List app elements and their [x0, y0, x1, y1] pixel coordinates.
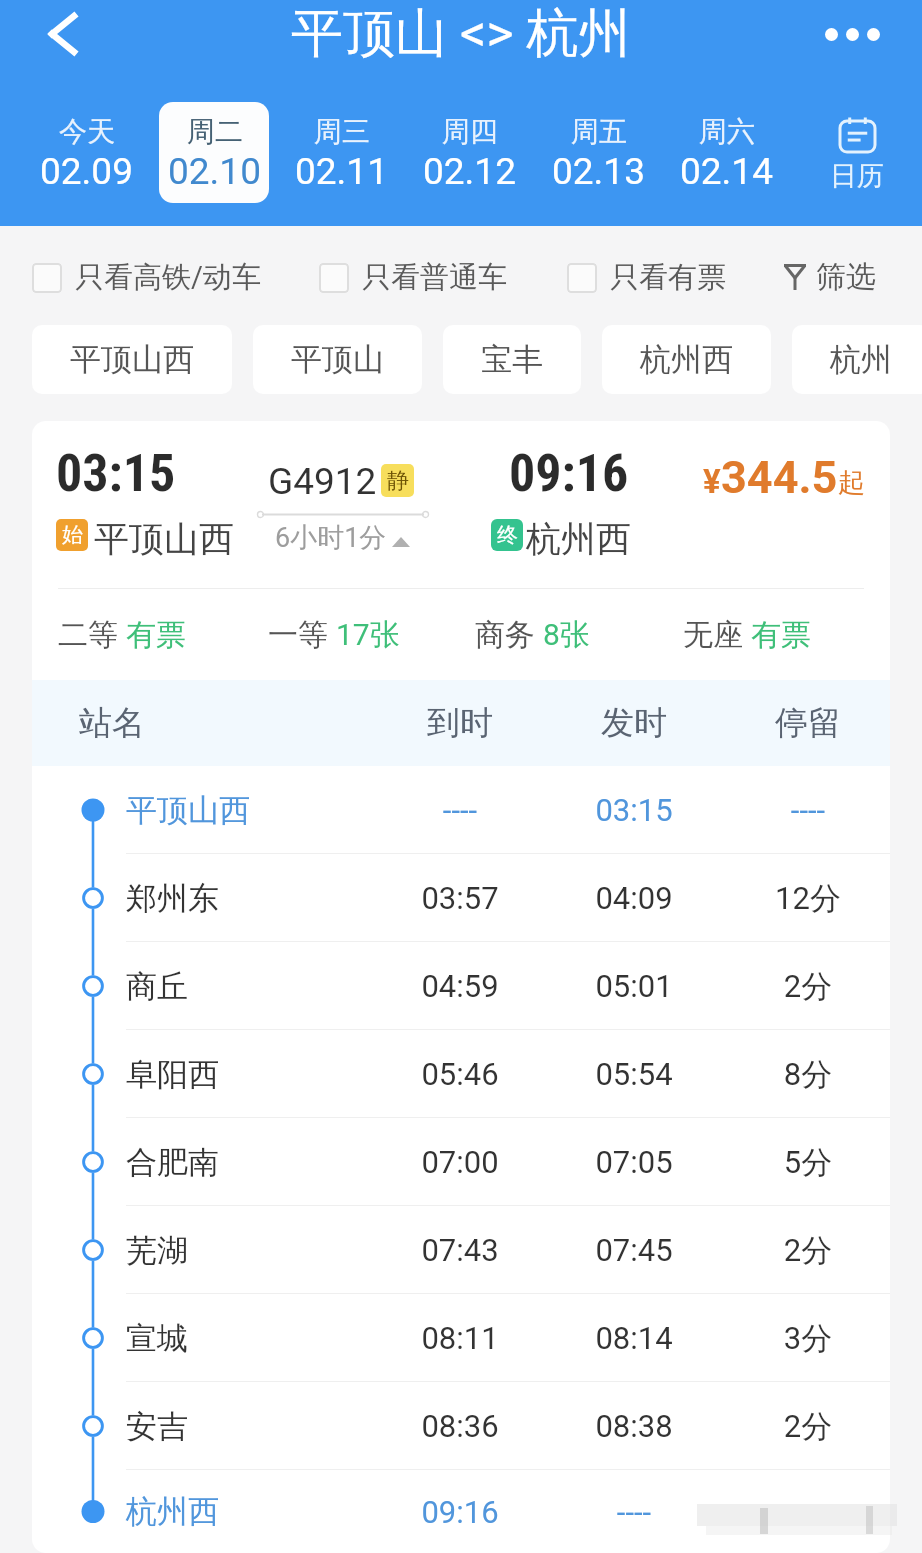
staticText: 2分	[733, 1407, 883, 1446]
button[interactable]: 商丘	[32, 942, 890, 1030]
staticText: 03:15	[559, 792, 709, 828]
staticText: 周二	[187, 114, 243, 149]
staticText: 03:57	[385, 880, 535, 916]
button[interactable]: 周四	[414, 102, 524, 203]
button[interactable]: 平顶山西	[32, 766, 890, 854]
staticText: 有票	[126, 616, 186, 654]
staticText: 一等	[268, 616, 328, 654]
staticText: 站名	[79, 702, 145, 744]
staticText: 发时	[559, 702, 709, 744]
staticText: 周五	[571, 114, 627, 149]
staticText: 02.13	[552, 150, 645, 193]
staticText: 只看高铁/动车	[75, 259, 261, 296]
staticText: 08:11	[385, 1320, 535, 1356]
staticText: 3分	[733, 1319, 883, 1358]
staticText: 平顶山 <> 杭州	[291, 1, 631, 67]
staticText: 07:05	[559, 1144, 709, 1180]
staticText: 2分	[733, 1231, 883, 1270]
button[interactable]: 筛选	[784, 247, 876, 307]
staticText: 杭州西	[126, 1492, 219, 1531]
staticText: 02.11	[295, 150, 388, 193]
staticText: 8分	[733, 1055, 883, 1094]
staticText: 08:14	[559, 1320, 709, 1356]
staticText: 芜湖	[126, 1231, 188, 1270]
staticText: 停留	[733, 702, 883, 744]
staticText: 杭州	[830, 340, 892, 379]
button[interactable]: 杭州西	[32, 1470, 890, 1553]
staticText: 平顶山西	[94, 517, 234, 561]
button[interactable]: 芜湖	[32, 1206, 890, 1294]
button[interactable]: 平顶山	[253, 325, 422, 394]
button[interactable]: 宝丰	[443, 325, 581, 394]
button[interactable]: 无座	[683, 589, 811, 680]
staticText: 二等	[58, 616, 118, 654]
button[interactable]: 宣城	[32, 1294, 890, 1382]
staticText: 周六	[699, 114, 755, 149]
staticText: 阜阳西	[126, 1055, 219, 1094]
staticText: 宝丰	[481, 340, 543, 379]
button[interactable]: 平顶山西	[32, 325, 232, 394]
staticText: 静	[387, 467, 409, 495]
button[interactable]: 今天	[31, 102, 141, 203]
staticText: 有票	[751, 616, 811, 654]
staticText: 今天	[59, 114, 115, 149]
staticText: 02.12	[423, 150, 516, 193]
staticText: 始	[62, 522, 83, 548]
staticText: 6小时1分	[275, 521, 387, 555]
button[interactable]: 只看普通车	[319, 259, 507, 296]
button[interactable]: 只看有票	[567, 259, 726, 296]
staticText: 08:38	[559, 1408, 709, 1444]
button[interactable]: 合肥南	[32, 1118, 890, 1206]
button[interactable]: 商务	[475, 589, 590, 680]
button[interactable]: 杭州西	[602, 325, 771, 394]
staticText: 筛选	[816, 258, 876, 296]
staticText: 合肥南	[126, 1143, 219, 1182]
staticText: ----	[733, 792, 883, 828]
staticText: 日历	[830, 159, 884, 193]
button[interactable]: 周六	[671, 102, 781, 203]
staticText: 平顶山	[291, 340, 384, 379]
staticText: 只看有票	[610, 259, 726, 296]
staticText: 郑州东	[126, 879, 219, 918]
button[interactable]: 阜阳西	[32, 1030, 890, 1118]
staticText: 到时	[385, 702, 535, 744]
staticText: 12分	[733, 879, 883, 918]
button[interactable]: 杭州	[792, 325, 922, 394]
button[interactable]: 安吉	[32, 1382, 890, 1470]
button[interactable]: 周三	[286, 102, 396, 203]
staticText: 只看普通车	[362, 259, 507, 296]
staticText: ----	[385, 792, 535, 828]
staticText: 04:59	[385, 968, 535, 1004]
staticText: G4912	[268, 460, 377, 503]
staticText: ----	[559, 1494, 709, 1530]
button[interactable]: 周二	[159, 102, 269, 203]
staticText: 宣城	[126, 1319, 188, 1358]
staticText: 03:15	[56, 443, 176, 504]
button[interactable]: 一等	[268, 589, 400, 680]
staticText: 02.14	[680, 150, 773, 193]
staticText: 无座	[683, 616, 743, 654]
button[interactable]: Calendar	[799, 100, 915, 204]
staticText: 商务	[475, 616, 535, 654]
staticText: 17张	[336, 616, 400, 654]
staticText: 07:43	[385, 1232, 535, 1268]
staticText: 02.10	[168, 150, 261, 193]
button[interactable]: Back	[27, 0, 99, 68]
staticText: 杭州西	[526, 517, 631, 561]
staticText	[733, 1494, 883, 1530]
button[interactable]: 二等	[58, 589, 186, 680]
staticText: 周三	[314, 114, 370, 149]
staticText: 05:01	[559, 968, 709, 1004]
button[interactable]: More options	[806, 0, 898, 68]
staticText: 2分	[733, 967, 883, 1006]
staticText: 安吉	[126, 1407, 188, 1446]
staticText: 09:16	[509, 443, 629, 504]
button[interactable]: 周五	[543, 102, 653, 203]
staticText: 09:16	[385, 1494, 535, 1530]
button[interactable]: 郑州东	[32, 854, 890, 942]
staticText: 周四	[442, 114, 498, 149]
staticText: 05:46	[385, 1056, 535, 1092]
button[interactable]: 只看高铁/动车	[32, 259, 261, 296]
staticText: 5分	[733, 1143, 883, 1182]
staticText: 平顶山西	[70, 340, 194, 379]
